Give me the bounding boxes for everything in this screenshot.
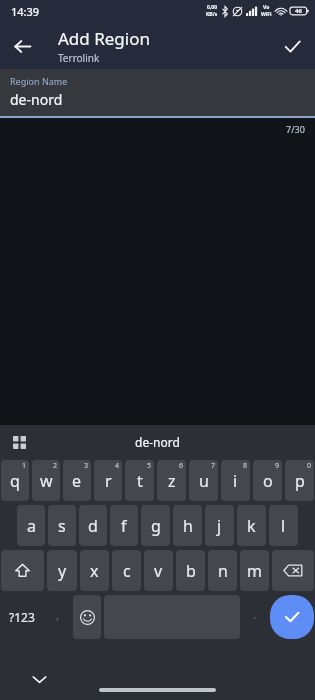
button[interactable]: k <box>237 505 266 546</box>
button[interactable]: t <box>125 460 154 501</box>
staticText: , <box>56 606 60 622</box>
button[interactable]: y <box>47 550 77 591</box>
staticText: Terrolink <box>58 51 100 65</box>
staticText: c <box>123 560 131 582</box>
button[interactable]: g <box>141 505 170 546</box>
button[interactable]: f <box>110 505 138 546</box>
staticText: f <box>121 515 127 537</box>
button[interactable]: x <box>80 550 109 591</box>
staticText: p <box>295 470 305 492</box>
staticText: w <box>40 470 53 492</box>
staticText: i <box>233 470 238 492</box>
button[interactable]: c <box>112 550 141 591</box>
button[interactable]: ?123 <box>1 595 43 639</box>
button[interactable]: m <box>240 550 269 591</box>
staticText: t <box>137 470 143 492</box>
button[interactable]: h <box>173 505 202 546</box>
staticText: 5 <box>147 461 152 471</box>
staticText: . <box>253 606 257 622</box>
staticText: 8 <box>243 461 248 471</box>
staticText: 0,00 <box>207 4 218 11</box>
staticText: Vo <box>263 4 270 11</box>
staticText: n <box>218 560 228 582</box>
staticText: k <box>247 515 256 537</box>
button[interactable]: d <box>79 505 107 546</box>
staticText: 7/30 <box>286 123 305 135</box>
staticText: 2 <box>53 461 58 471</box>
staticText: q <box>10 470 20 492</box>
staticText: y <box>58 560 67 582</box>
button[interactable]: a <box>17 505 45 546</box>
button[interactable]: Save <box>269 23 315 69</box>
button[interactable]: Shift <box>1 550 44 591</box>
button[interactable]: Hide keyboard <box>22 662 56 696</box>
button[interactable]: Backspace <box>272 550 314 591</box>
button[interactable]: n <box>208 550 237 591</box>
staticText: s <box>58 515 66 537</box>
staticText: 0 <box>307 461 312 471</box>
button[interactable]: Emoji <box>73 595 101 639</box>
button[interactable]: s <box>48 505 76 546</box>
staticText: 9 <box>275 461 280 471</box>
staticText: WiFi <box>261 11 272 18</box>
staticText: ?123 <box>9 609 35 625</box>
staticText: 7 <box>211 461 216 471</box>
staticText: o <box>263 470 273 492</box>
staticText: v <box>154 560 163 582</box>
staticText: b <box>186 560 196 582</box>
staticText: 46 <box>295 7 302 15</box>
staticText: h <box>183 515 193 537</box>
staticText: d <box>88 515 98 537</box>
staticText: e <box>72 470 82 492</box>
staticText: z <box>168 470 176 492</box>
button[interactable]: de-nord <box>135 434 180 450</box>
staticText: 3 <box>84 461 89 471</box>
staticText: j <box>217 515 222 537</box>
button[interactable]: w <box>32 460 60 501</box>
staticText: r <box>105 470 112 492</box>
staticText: 6 <box>179 461 184 471</box>
button[interactable]: l <box>269 505 298 546</box>
button[interactable]: b <box>176 550 205 591</box>
staticText: a <box>27 515 36 537</box>
staticText: l <box>281 515 286 537</box>
button[interactable]: r <box>94 460 122 501</box>
staticText: 4 <box>115 461 120 471</box>
button[interactable]: j <box>205 505 234 546</box>
staticText: KB/s <box>206 11 218 18</box>
staticText: u <box>199 470 209 492</box>
button[interactable]: Enter <box>270 595 314 639</box>
button[interactable]: Keyboard options <box>6 429 32 455</box>
button[interactable]: v <box>144 550 173 591</box>
button[interactable]: Region Name <box>0 69 315 116</box>
staticText: 14:39 <box>11 4 40 19</box>
staticText: m <box>247 560 262 582</box>
button[interactable]: i <box>221 460 250 501</box>
button[interactable]: Back <box>0 24 44 68</box>
button[interactable]: e <box>63 460 91 501</box>
staticText: 1 <box>22 461 27 471</box>
staticText: Region Name <box>10 75 68 87</box>
button[interactable]: p <box>285 460 314 501</box>
staticText: x <box>90 560 99 582</box>
button[interactable]: o <box>253 460 282 501</box>
staticText: g <box>151 515 161 537</box>
button[interactable]: z <box>157 460 186 501</box>
staticText: Add Region <box>58 27 150 50</box>
staticText: de-nord <box>10 90 63 109</box>
button[interactable]: u <box>189 460 218 501</box>
button[interactable]: q <box>1 460 29 501</box>
